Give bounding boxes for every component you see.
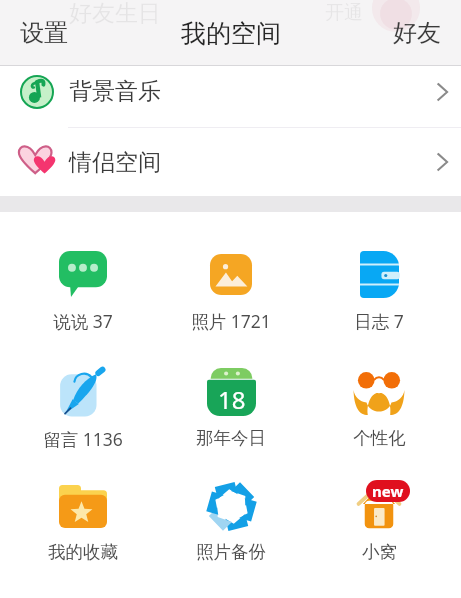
button[interactable]: 留言 1136: [8, 366, 157, 451]
staticText: 情侣空间: [69, 148, 161, 177]
staticText: 背景音乐: [69, 77, 161, 106]
button[interactable]: 照片 1721: [157, 248, 305, 333]
staticText: 留言 1136: [43, 427, 123, 451]
staticText: 我的空间: [181, 18, 281, 49]
button[interactable]: 说说 37: [8, 248, 157, 333]
button[interactable]: new: [305, 480, 453, 563]
staticText: 说说 37: [53, 309, 113, 333]
staticText: 小窝: [362, 541, 397, 563]
button[interactable]: 个性化: [305, 366, 453, 449]
staticText: 照片 1721: [191, 309, 271, 333]
button[interactable]: 情侣空间: [0, 128, 461, 196]
button[interactable]: 18: [157, 366, 305, 449]
staticText: 日志 7: [354, 309, 404, 333]
staticText: 开通: [325, 1, 363, 25]
staticText: 设置: [20, 18, 68, 48]
button[interactable]: 我的收藏: [8, 480, 157, 563]
button[interactable]: 照片备份: [157, 480, 305, 563]
staticText: 我的收藏: [48, 541, 118, 563]
button[interactable]: 日志 7: [305, 248, 453, 333]
button[interactable]: 设置: [9, 7, 79, 59]
staticText: 好友生日: [69, 0, 161, 28]
staticText: 好友: [393, 18, 441, 48]
staticText: 那年今日: [196, 427, 266, 449]
staticText: 照片备份: [196, 541, 266, 563]
staticText: 个性化: [353, 427, 406, 449]
button[interactable]: 背景音乐: [0, 66, 461, 127]
button[interactable]: 好友: [382, 7, 452, 59]
staticText: new: [372, 481, 404, 501]
staticText: 18: [218, 383, 246, 416]
